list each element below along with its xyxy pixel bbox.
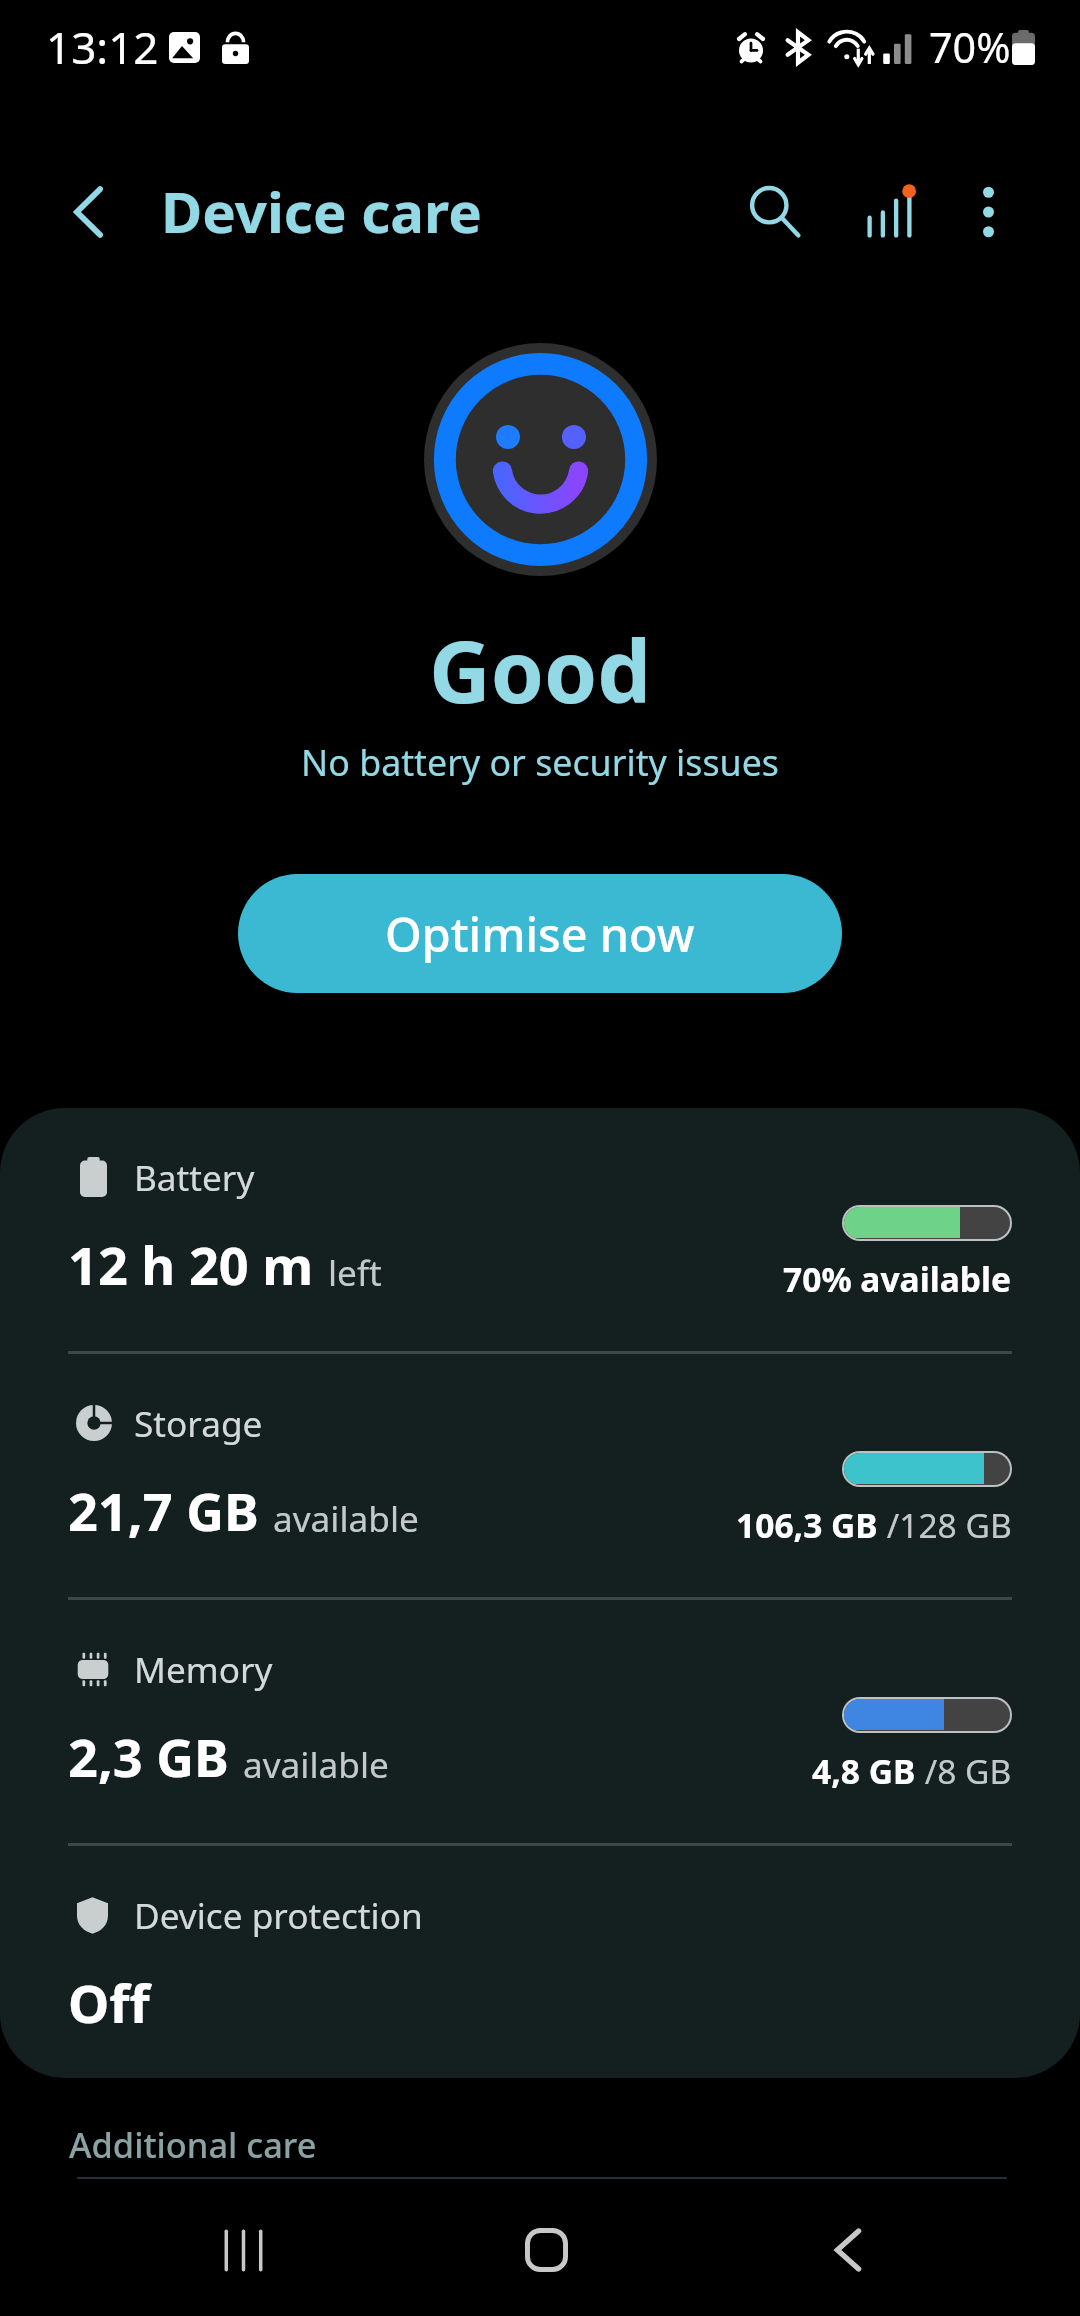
button[interactable]: Home <box>491 2195 601 2305</box>
button[interactable]: Storage <box>0 1354 1080 1597</box>
button[interactable]: Battery <box>0 1108 1080 1351</box>
staticText: 21,7 GB <box>68 1475 259 1546</box>
staticText: 106,3 GB <box>736 1502 878 1548</box>
staticText: 70% <box>929 19 1011 75</box>
staticText: Additional care <box>69 2121 317 2168</box>
staticText: Optimise now <box>385 902 695 966</box>
staticText: Device care <box>161 173 482 250</box>
staticText: /128 GB <box>878 1502 1012 1548</box>
button[interactable]: Recents <box>188 2195 298 2305</box>
button[interactable]: Memory <box>0 1600 1080 1843</box>
button[interactable]: Device protection <box>0 1846 1080 2078</box>
staticText: Storage <box>134 1399 263 1447</box>
staticText: Good <box>0 612 1080 728</box>
staticText: left <box>328 1248 382 1296</box>
staticText: Battery <box>134 1153 255 1201</box>
button[interactable]: Back <box>793 2195 903 2305</box>
button[interactable]: Search <box>714 151 835 272</box>
staticText: 4,8 GB <box>812 1748 916 1794</box>
button[interactable]: More options <box>928 151 1049 272</box>
staticText: 12 h 20 m <box>68 1229 314 1300</box>
staticText: Off <box>68 1967 150 2038</box>
staticText: Device protection <box>134 1891 423 1939</box>
staticText: 2,3 GB <box>68 1721 229 1792</box>
button[interactable]: Usage statistics <box>829 151 950 272</box>
staticText: No battery or security issues <box>0 738 1080 787</box>
staticText: available <box>273 1494 419 1542</box>
button[interactable]: Back <box>28 151 149 272</box>
staticText: Memory <box>134 1645 273 1693</box>
button[interactable]: Optimise now <box>238 874 842 993</box>
staticText: available <box>243 1740 389 1788</box>
staticText: /8 GB <box>916 1748 1012 1794</box>
staticText: 13:12 <box>46 17 159 77</box>
staticText: 70% available <box>783 1256 1012 1302</box>
